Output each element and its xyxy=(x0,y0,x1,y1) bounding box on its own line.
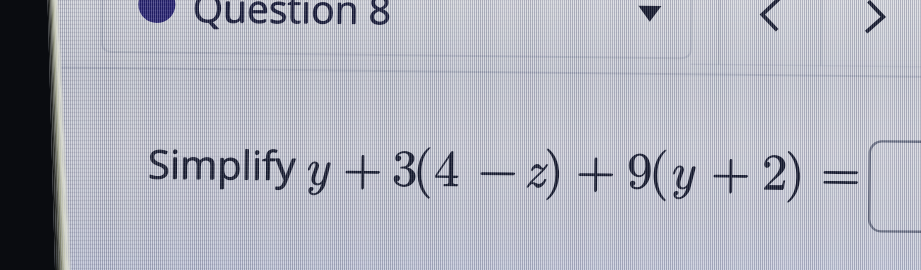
button[interactable] xyxy=(0,0,921,270)
